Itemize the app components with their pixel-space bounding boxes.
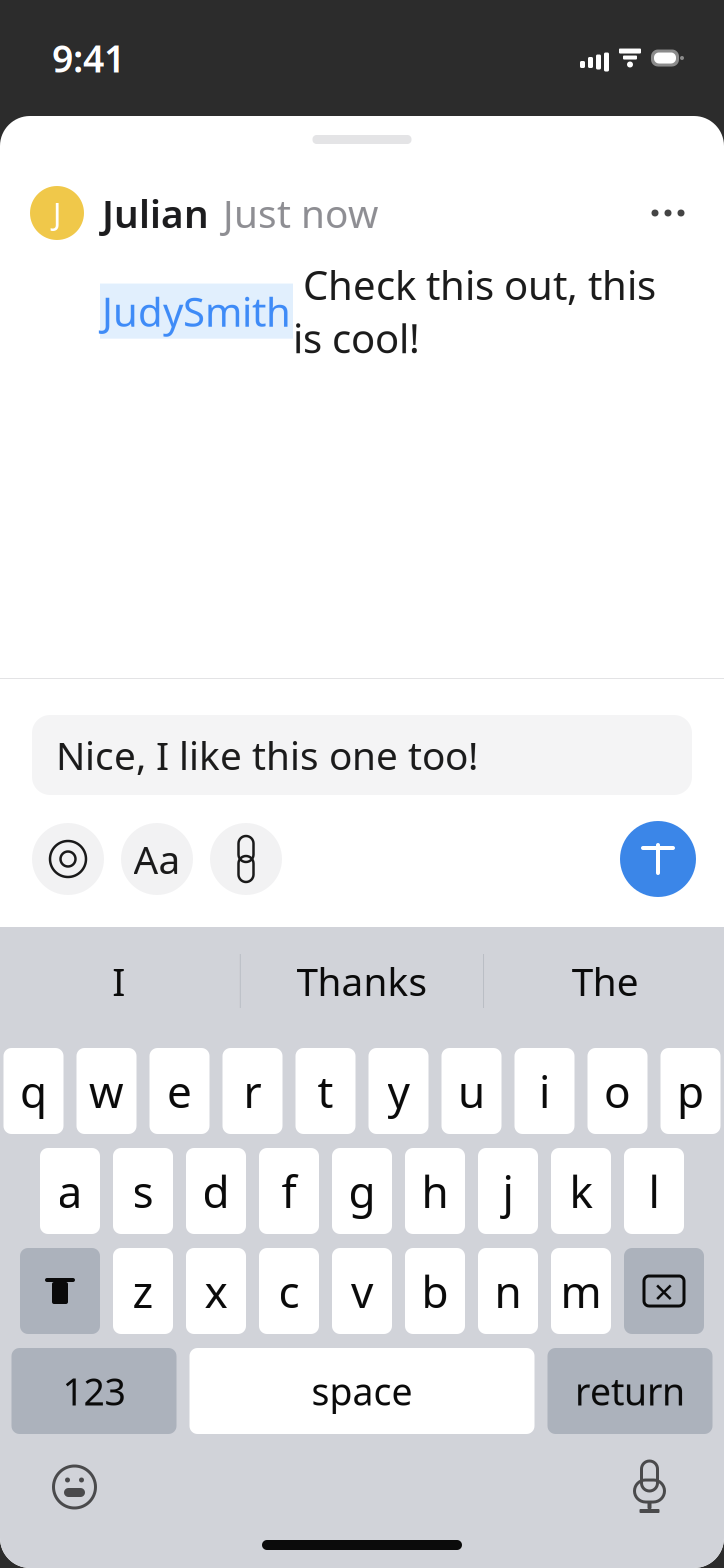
staticText: y [387, 1062, 409, 1120]
staticText: o [604, 1062, 631, 1120]
staticText: Nice, I like this one too! [56, 729, 478, 781]
button[interactable]: a [40, 1148, 100, 1234]
staticText: The [572, 955, 639, 1007]
button[interactable]: m [551, 1248, 611, 1334]
button[interactable]: Text format [121, 823, 193, 895]
staticText: b [421, 1262, 448, 1320]
staticText: c [278, 1262, 299, 1320]
staticText: q [20, 1062, 47, 1120]
button[interactable]: space [189, 1348, 534, 1434]
button[interactable]: l [624, 1148, 684, 1234]
button[interactable]: More options [640, 186, 696, 240]
staticText: i [539, 1062, 550, 1120]
button[interactable]: u [441, 1048, 501, 1134]
staticText: JudySmith [102, 285, 291, 338]
button[interactable]: c [259, 1248, 319, 1334]
staticText: a [57, 1162, 82, 1220]
button[interactable]: r [222, 1048, 282, 1134]
staticText: z [132, 1262, 153, 1320]
button[interactable]: g [332, 1148, 392, 1234]
button[interactable]: p [660, 1048, 720, 1134]
staticText: h [421, 1162, 448, 1220]
button[interactable]: b [405, 1248, 465, 1334]
staticText: p [677, 1062, 704, 1120]
button[interactable]: w [76, 1048, 136, 1134]
staticText: r [243, 1062, 261, 1120]
button[interactable]: f [259, 1148, 319, 1234]
button[interactable]: q [3, 1048, 63, 1134]
staticText: w [89, 1062, 124, 1120]
button[interactable]: Insert link [210, 823, 282, 895]
button[interactable]: o [587, 1048, 647, 1134]
staticText: x [204, 1262, 227, 1320]
staticText: m [560, 1262, 601, 1320]
button[interactable]: return [547, 1348, 712, 1434]
staticText: space [311, 1366, 412, 1416]
button[interactable]: Dictation [620, 1458, 678, 1516]
staticText: return [575, 1366, 685, 1416]
staticText: t [317, 1062, 333, 1120]
button[interactable]: 123 [11, 1348, 176, 1434]
button[interactable]: The [484, 927, 724, 1035]
button[interactable]: I [0, 927, 240, 1035]
button[interactable]: e [149, 1048, 209, 1134]
button[interactable]: y [368, 1048, 428, 1134]
staticText: Thanks [296, 955, 427, 1007]
button[interactable]: k [551, 1148, 611, 1234]
button[interactable]: Delete [624, 1248, 704, 1334]
button[interactable]: Shift [20, 1248, 100, 1334]
button[interactable]: v [332, 1248, 392, 1334]
staticText: n [494, 1262, 521, 1320]
staticText: Aa [133, 833, 180, 885]
button[interactable]: Nice, I like this one too! [32, 715, 692, 795]
staticText: Check this out, this is cool! [293, 258, 656, 364]
staticText: j [502, 1162, 513, 1220]
staticText: v [351, 1262, 373, 1320]
button[interactable]: x [186, 1248, 246, 1334]
button[interactable]: t [295, 1048, 355, 1134]
staticText: e [167, 1062, 192, 1120]
staticText: × [654, 1268, 674, 1314]
staticText: d [202, 1162, 229, 1220]
button[interactable]: h [405, 1148, 465, 1234]
staticText: l [648, 1162, 659, 1220]
staticText: 123 [62, 1366, 125, 1416]
button[interactable]: d [186, 1148, 246, 1234]
staticText: f [281, 1162, 296, 1220]
button[interactable]: s [113, 1148, 173, 1234]
button[interactable]: Mention [32, 823, 104, 895]
button[interactable]: i [514, 1048, 574, 1134]
staticText: Julian [102, 187, 209, 239]
button[interactable]: n [478, 1248, 538, 1334]
staticText: I [112, 955, 125, 1007]
button[interactable]: Send [620, 821, 696, 897]
button[interactable]: j [478, 1148, 538, 1234]
button[interactable]: Thanks [241, 927, 483, 1035]
staticText: u [458, 1062, 485, 1120]
button[interactable]: Emoji [45, 1458, 103, 1516]
staticText: s [132, 1162, 153, 1220]
staticText: k [569, 1162, 592, 1220]
staticText: Just now [223, 187, 378, 239]
staticText: 9:41 [52, 33, 125, 83]
staticText: g [348, 1162, 375, 1220]
button[interactable]: z [113, 1248, 173, 1334]
staticText: J [53, 193, 61, 233]
